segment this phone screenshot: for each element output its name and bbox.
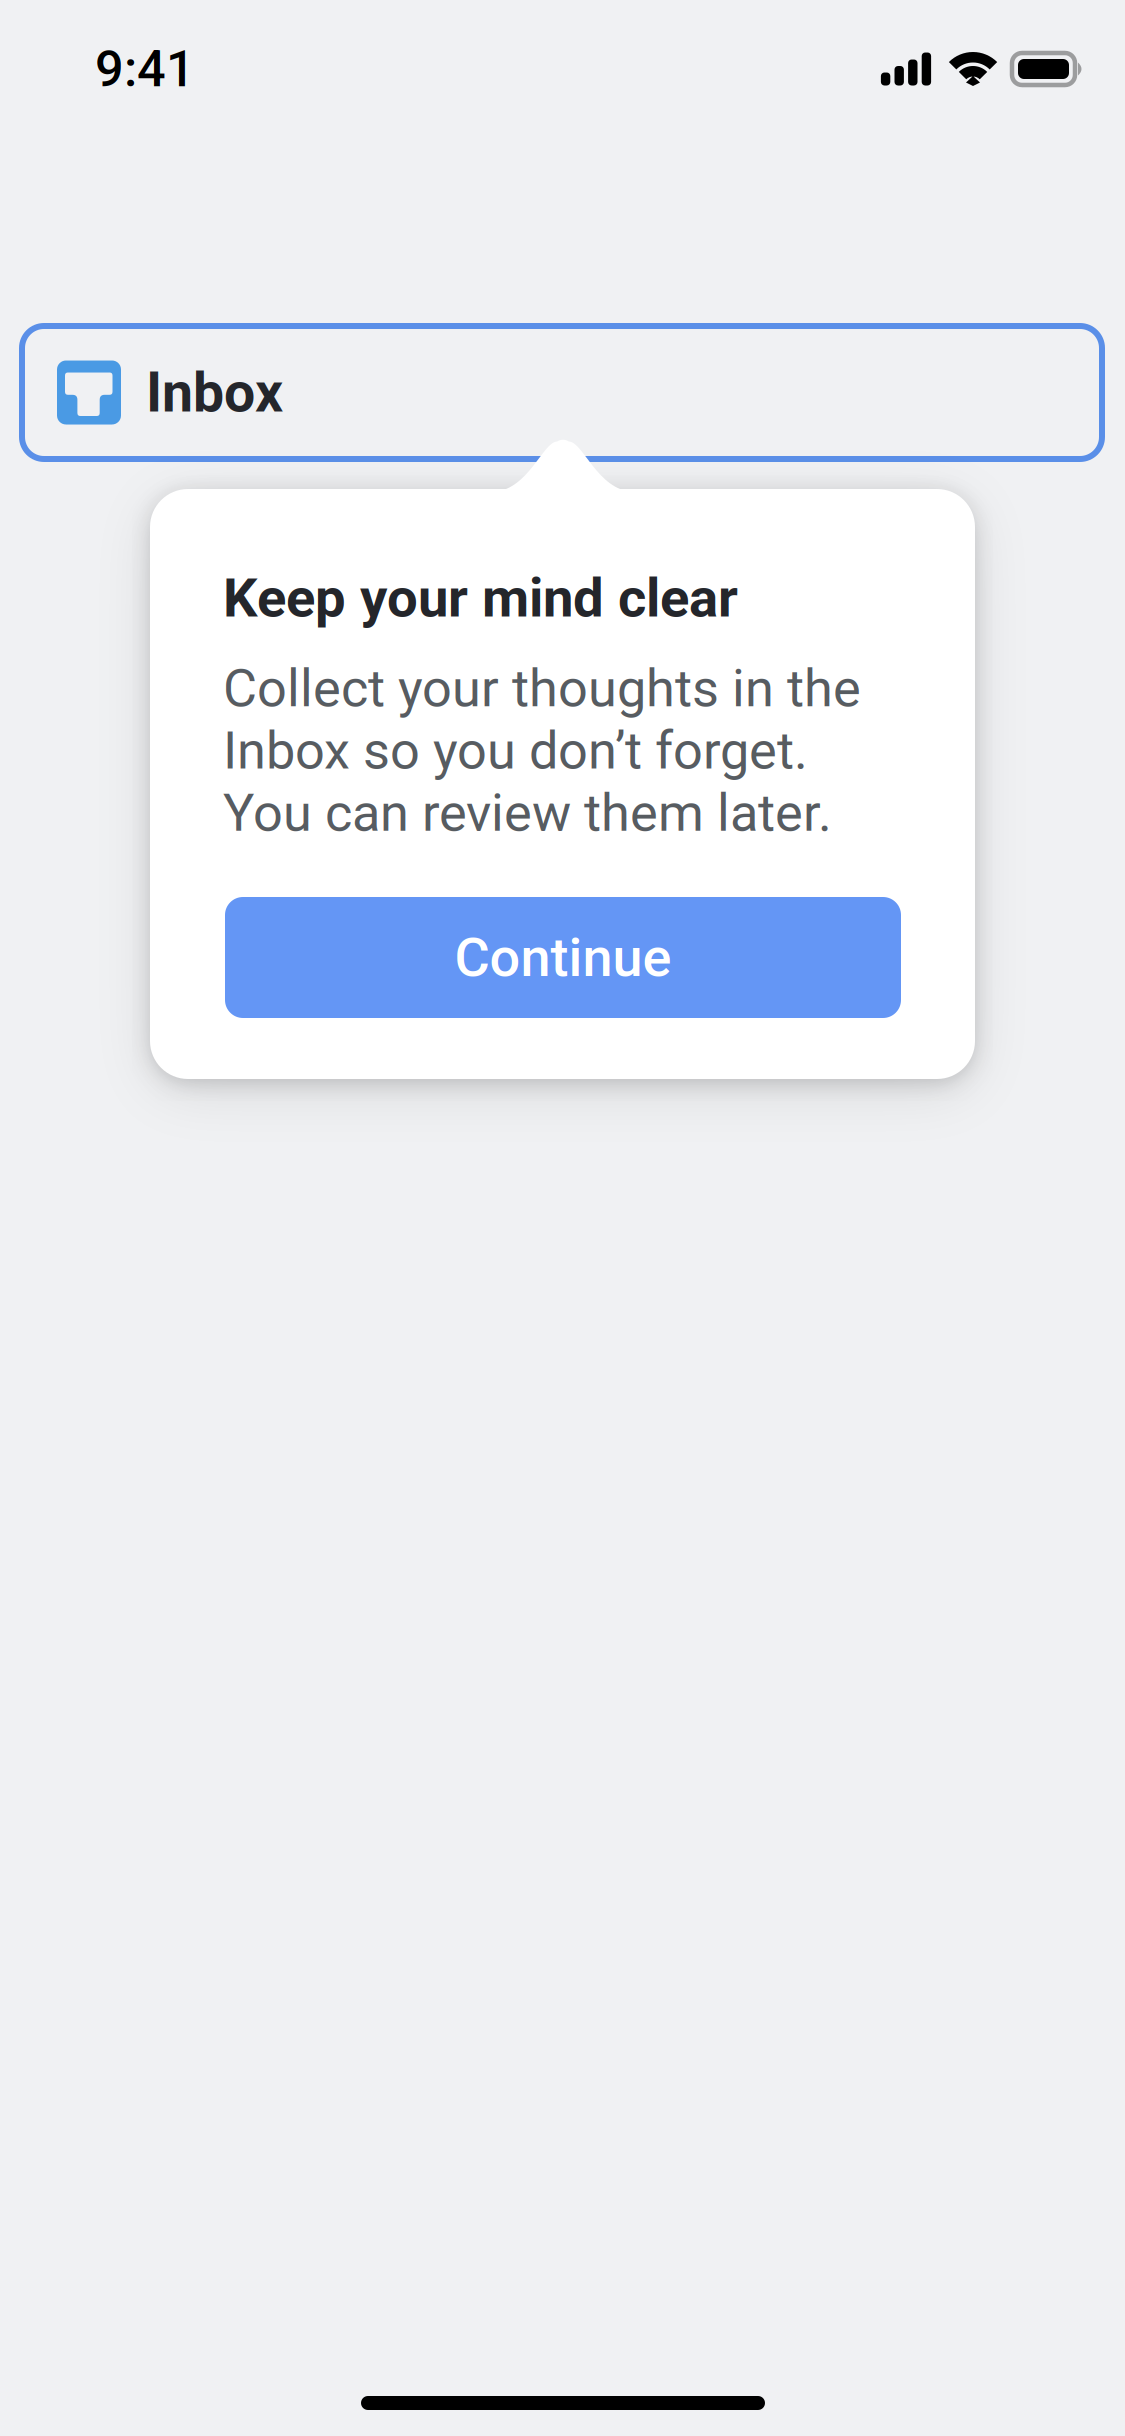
staticText: Continue <box>454 926 671 989</box>
staticText: Collect your thoughts in the <box>223 658 861 719</box>
staticText: Keep your mind clear <box>223 566 738 630</box>
staticText: 9:41 <box>95 39 195 99</box>
staticText: Inbox so you don’t forget. <box>223 720 808 781</box>
staticText: Inbox <box>146 360 283 425</box>
button[interactable]: Inbox <box>19 323 1105 462</box>
staticText: You can review them later. <box>223 782 832 843</box>
button[interactable]: Continue <box>225 897 901 1018</box>
